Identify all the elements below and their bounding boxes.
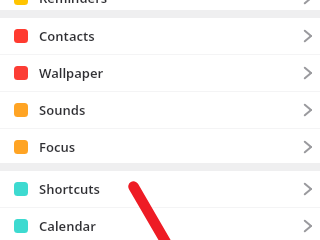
button[interactable]: Shortcuts	[0, 171, 320, 207]
staticText: Shortcuts	[39, 180, 100, 198]
other: Open Contacts	[301, 18, 315, 54]
staticText: Wallpaper	[39, 64, 104, 82]
button[interactable]: Focus	[0, 129, 320, 165]
other: Open Reminders	[301, 0, 315, 16]
other: Open Shortcuts	[301, 171, 315, 207]
other: Open Sounds	[301, 92, 315, 128]
staticText: Sounds	[39, 101, 86, 119]
button[interactable]: Calendar	[0, 208, 320, 240]
button[interactable]: Wallpaper	[0, 55, 320, 91]
other: Open Wallpaper	[301, 55, 315, 91]
staticText: Focus	[39, 138, 76, 156]
staticText: Reminders	[39, 0, 108, 7]
other: Open Calendar	[301, 208, 315, 240]
staticText: Calendar	[39, 217, 96, 235]
button[interactable]: Contacts	[0, 18, 320, 54]
button[interactable]: Sounds	[0, 92, 320, 128]
button[interactable]: Reminders	[0, 0, 320, 16]
other: Open Focus	[301, 129, 315, 165]
staticText: Contacts	[39, 27, 95, 45]
